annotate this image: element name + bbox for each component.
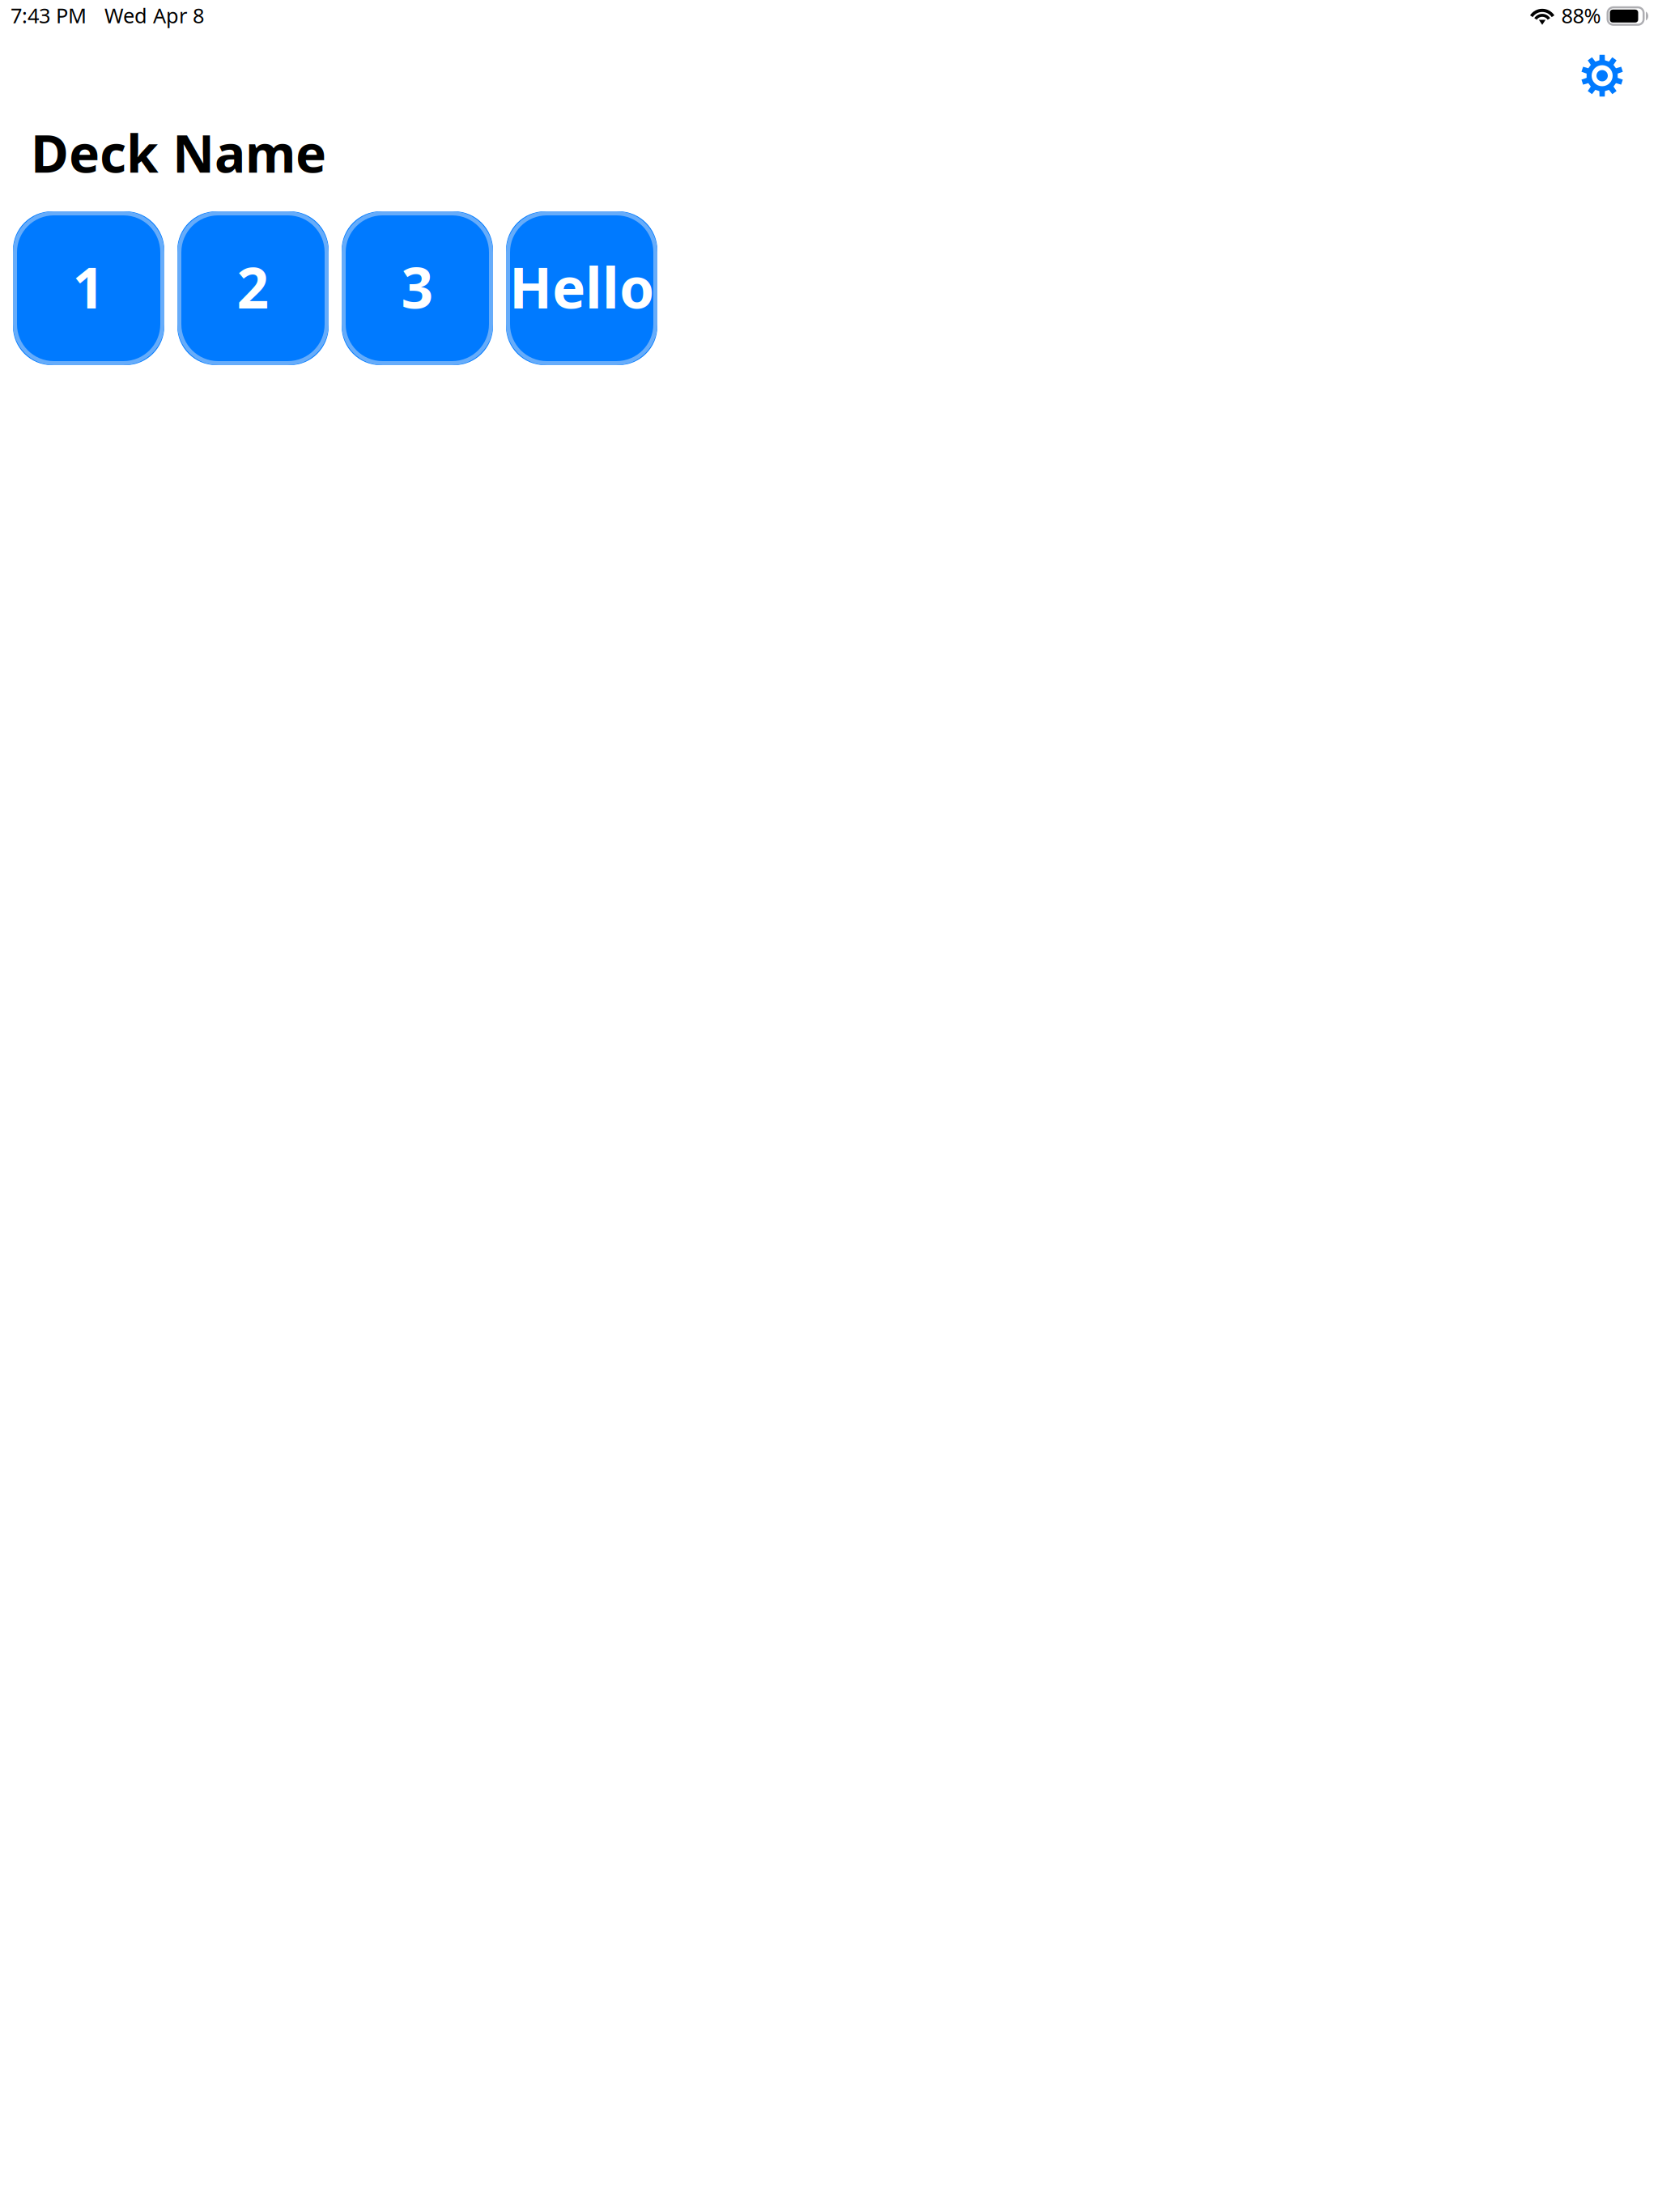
staticText: 3 <box>401 249 434 324</box>
button[interactable]: 3 <box>342 211 493 365</box>
button[interactable]: Hello <box>506 211 657 365</box>
button[interactable]: 2 <box>177 211 329 365</box>
staticText: Deck Name <box>31 118 326 187</box>
staticText: Hello <box>509 249 654 324</box>
staticText: 7:43 PM <box>11 2 87 29</box>
button[interactable]: 1 <box>13 211 164 365</box>
staticText: 1 <box>72 249 105 324</box>
button[interactable]: Settings <box>1570 39 1635 106</box>
staticText: 2 <box>237 249 269 324</box>
staticText: 88% <box>1561 2 1601 29</box>
staticText: Wed Apr 8 <box>104 2 204 29</box>
